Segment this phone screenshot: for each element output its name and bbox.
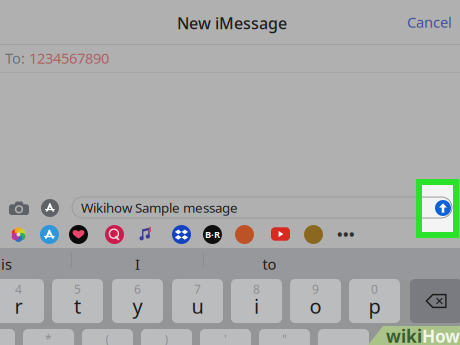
staticText: "	[282, 331, 287, 345]
staticText: u	[191, 293, 203, 319]
staticText: i	[254, 293, 259, 319]
button[interactable]: to	[204, 248, 335, 280]
staticText: 7	[194, 281, 201, 297]
staticText: 1234567890	[29, 48, 109, 68]
button[interactable]: YouTube	[271, 227, 290, 241]
staticText: is	[1, 254, 12, 274]
staticText: r	[14, 293, 22, 319]
button[interactable]: Images	[105, 225, 124, 244]
staticText: o	[309, 293, 321, 319]
button[interactable]: Digital Touch	[69, 225, 88, 244]
button[interactable]: Take photo	[4, 195, 34, 221]
button[interactable]: Music	[137, 226, 154, 241]
button[interactable]: Food app	[235, 225, 254, 244]
button[interactable]: iMessage apps	[36, 195, 64, 221]
staticText: *	[45, 331, 52, 345]
button[interactable]: App Store	[40, 225, 59, 244]
button[interactable]: Cancel	[400, 9, 456, 35]
staticText: 9	[312, 281, 319, 297]
staticText: )	[164, 331, 168, 345]
staticText: To:	[5, 48, 25, 68]
staticText: I	[135, 254, 140, 274]
button[interactable]: Send	[435, 200, 451, 216]
staticText: to	[262, 254, 276, 274]
button[interactable]: Wikihow Sample message	[72, 197, 452, 218]
staticText: 0	[371, 281, 378, 297]
staticText: 4	[15, 281, 22, 297]
button[interactable]: Baskin Robbins	[203, 225, 222, 244]
staticText: •••	[337, 224, 355, 244]
staticText: B·R	[205, 228, 220, 241]
staticText: t	[74, 293, 81, 319]
button[interactable]: Delete	[410, 279, 460, 323]
staticText: How	[422, 324, 460, 345]
button[interactable]: Photos	[11, 227, 26, 242]
button[interactable]: Dropbox	[172, 225, 191, 244]
button[interactable]: More apps	[334, 226, 358, 242]
staticText: (	[105, 331, 109, 345]
staticText: p	[368, 293, 380, 319]
staticText: wiki	[386, 324, 422, 345]
staticText: Cancel	[407, 12, 452, 32]
button[interactable]: I	[72, 248, 203, 280]
staticText: New iMessage	[177, 12, 287, 34]
staticText: 6	[134, 281, 141, 297]
staticText: y	[132, 293, 142, 319]
button[interactable]: App	[304, 225, 323, 244]
staticText: 5	[74, 281, 81, 297]
staticText: Wikihow Sample message	[81, 199, 238, 216]
staticText: '	[224, 331, 227, 345]
staticText: 8	[253, 281, 260, 297]
button[interactable]: is	[0, 248, 72, 280]
